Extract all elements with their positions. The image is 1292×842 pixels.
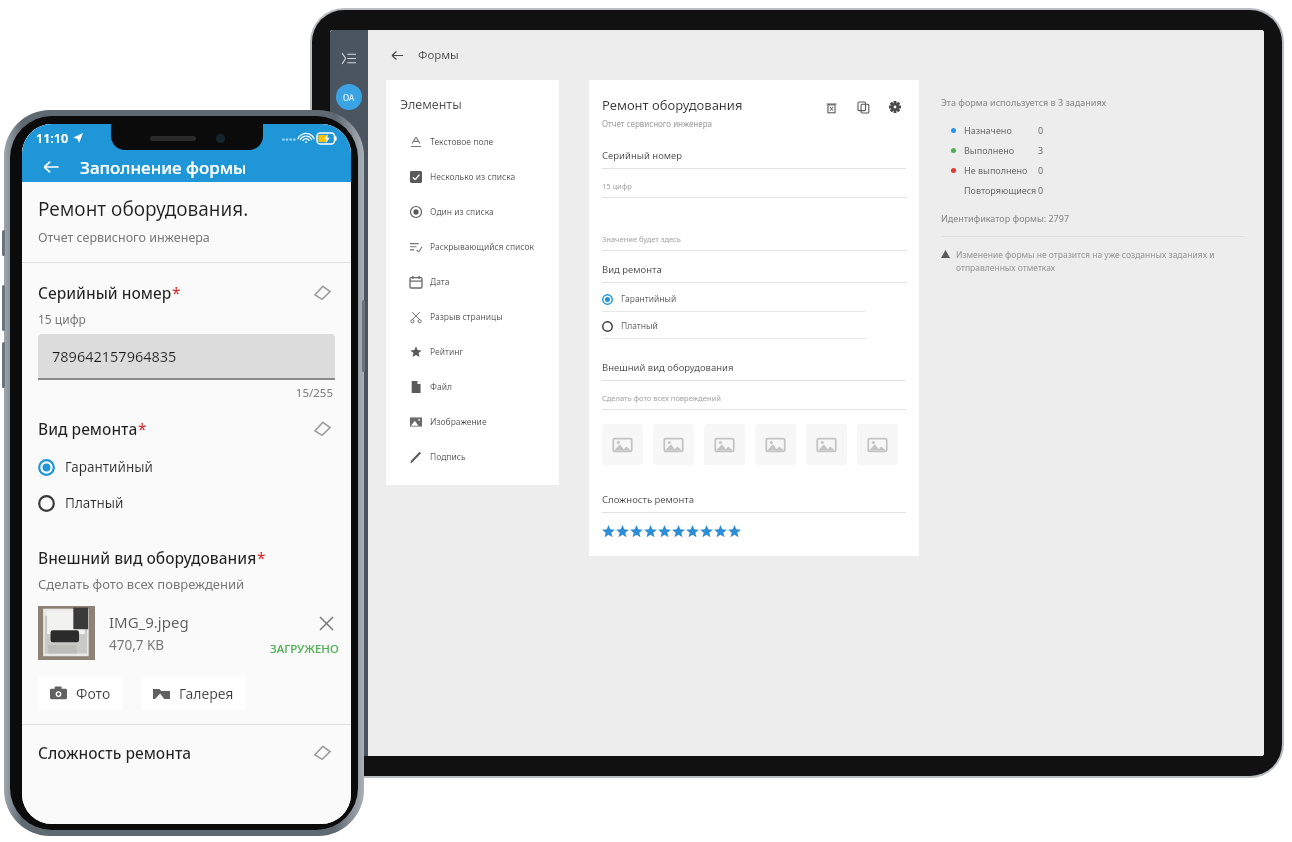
staticText: Элементы (400, 96, 462, 113)
button[interactable]: Раскрывающийся список (400, 232, 545, 261)
staticText: Формы (418, 47, 459, 63)
button[interactable]: Фото (38, 676, 123, 710)
button[interactable]: Rate (630, 525, 643, 538)
staticText: Дата (430, 276, 450, 288)
button[interactable]: Гарантийный (22, 453, 351, 481)
staticText: Вид ремонта (602, 263, 662, 276)
staticText: Эта форма используется в 3 заданиях (941, 96, 1107, 108)
button[interactable]: Rate (658, 525, 671, 538)
staticText: Подпись (430, 451, 466, 463)
button[interactable]: Rate (602, 525, 615, 538)
button[interactable]: Rate (686, 525, 699, 538)
staticText: 15 цифр (38, 311, 86, 327)
staticText: * (138, 418, 147, 439)
button[interactable]: Один из списка (400, 197, 545, 226)
staticText: Сделать фото всех повреждений (602, 393, 721, 403)
staticText: 3 (1038, 144, 1044, 156)
staticText: Отчет сервисного инженера (602, 118, 712, 129)
button[interactable]: Изображение (400, 407, 545, 436)
staticText: 789642157964835 (52, 346, 177, 366)
button[interactable]: Гарантийный (602, 293, 866, 312)
button[interactable]: Несколько из списка (400, 162, 545, 191)
staticText: IMG_9.jpeg (109, 612, 189, 632)
staticText: Назначено (964, 124, 1038, 136)
staticText: Внешний вид оборудования (602, 361, 734, 374)
staticText: Ремонт оборудования (602, 96, 743, 114)
staticText: Сложность ремонта (38, 742, 309, 763)
staticText: Отчет сервисного инженера (38, 229, 210, 246)
button[interactable]: OA (336, 84, 362, 110)
staticText: Внешний вид оборудования (38, 547, 257, 568)
staticText: Текстовое поле (430, 136, 494, 148)
button[interactable]: Дата (400, 267, 545, 296)
button[interactable]: Рейтинг (400, 337, 545, 366)
staticText: Разрыв страницы (430, 311, 503, 323)
staticText: Вид ремонта (38, 418, 138, 439)
staticText: 11:10 (36, 130, 69, 147)
button[interactable]: Clear (309, 739, 335, 765)
button[interactable]: Платный (602, 320, 866, 339)
staticText: Выполнено (964, 144, 1038, 156)
button[interactable]: Delete (820, 96, 842, 118)
button[interactable]: Settings (884, 96, 906, 118)
button[interactable]: Clear (309, 415, 335, 441)
staticText: * (172, 282, 181, 303)
staticText: ЗАГРУЖЕНО (270, 641, 339, 657)
button[interactable]: Back (386, 44, 408, 66)
staticText: Значение будет здесь (602, 234, 681, 244)
button[interactable]: Подпись (400, 442, 545, 471)
staticText: Сложность ремонта (602, 493, 695, 506)
staticText: 0 (1038, 164, 1044, 176)
button[interactable]: Текстовое поле (400, 127, 545, 156)
button[interactable]: Галерея (141, 676, 246, 710)
staticText: 0 (1038, 124, 1044, 136)
button[interactable]: Разрыв страницы (400, 302, 545, 331)
staticText: Рейтинг (430, 346, 464, 358)
button[interactable]: Menu (337, 46, 361, 70)
staticText: OA (343, 92, 355, 103)
button[interactable]: Rate (644, 525, 657, 538)
staticText: Не выполнено (964, 164, 1038, 176)
staticText: Серийный номер (38, 282, 172, 303)
staticText: Повторяющиеся (964, 184, 1038, 196)
button[interactable]: Add photo (857, 424, 898, 465)
button[interactable]: Add photo (755, 424, 796, 465)
button[interactable]: Add photo (653, 424, 694, 465)
button[interactable]: Add photo (602, 424, 643, 465)
staticText: Файл (430, 381, 452, 393)
staticText: * (257, 547, 266, 568)
button[interactable]: Rate (714, 525, 727, 538)
button[interactable]: Remove file (313, 610, 339, 636)
button[interactable]: 789642157964835 (38, 334, 335, 378)
staticText: Ремонт оборудования. (38, 196, 249, 222)
staticText: 0 (1038, 184, 1044, 196)
staticText: 15 цифр (602, 181, 632, 191)
staticText: 470,7 KB (109, 636, 165, 654)
staticText: Идентификатор формы: 2797 (941, 212, 1070, 224)
staticText: Галерея (179, 684, 234, 703)
staticText: Платный (621, 320, 658, 332)
staticText: Раскрывающийся список (430, 241, 534, 253)
button[interactable]: Rate (728, 525, 741, 538)
button[interactable]: Back (36, 152, 66, 182)
staticText: Гарантийный (621, 293, 677, 305)
button[interactable]: Copy (852, 96, 874, 118)
staticText: Изображение (430, 416, 487, 428)
button[interactable]: Rate (616, 525, 629, 538)
staticText: Фото (76, 684, 111, 703)
button[interactable]: Add photo (806, 424, 847, 465)
button[interactable]: Clear (309, 279, 335, 305)
staticText: Заполнение формы (80, 156, 247, 179)
button[interactable]: Rate (700, 525, 713, 538)
button[interactable]: Rate (672, 525, 685, 538)
staticText: Один из списка (430, 206, 494, 218)
button[interactable]: Файл (400, 372, 545, 401)
button[interactable]: Add photo (704, 424, 745, 465)
staticText: Сделать фото всех повреждений (38, 575, 245, 593)
staticText: Несколько из списка (430, 171, 516, 183)
staticText: Гарантийный (65, 458, 153, 476)
staticText: Платный (65, 494, 124, 512)
button[interactable]: Платный (22, 489, 351, 517)
staticText: Изменение формы не отразится на уже созд… (956, 249, 1244, 274)
staticText: 15/255 (22, 385, 333, 401)
